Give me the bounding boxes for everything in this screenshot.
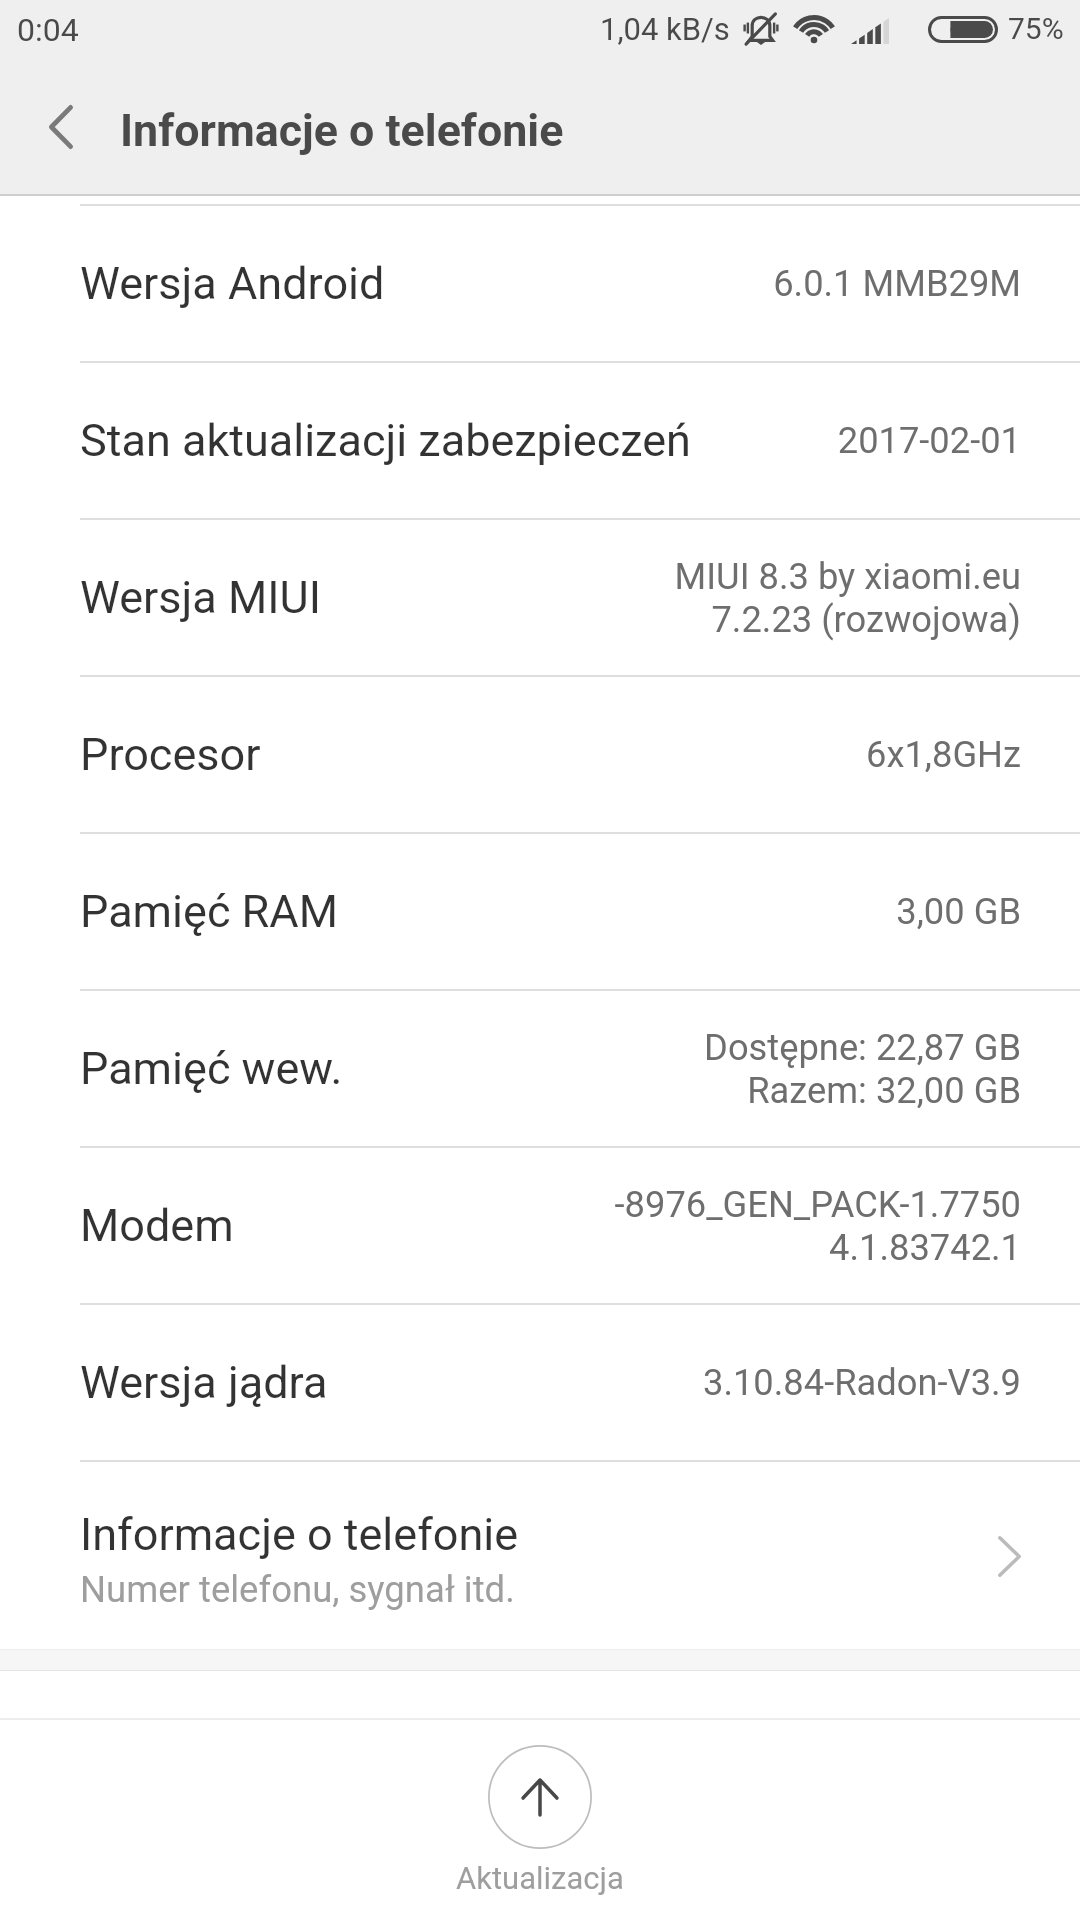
staticText: Pamięć RAM <box>80 885 338 938</box>
staticText: Wersja MIUI <box>80 571 321 624</box>
staticText: Wersja Android <box>80 257 385 310</box>
staticText: Pamięć wew. <box>80 1042 343 1095</box>
staticText: -8976_GEN_PACK-1.7750 4.1.83742.1 <box>614 1183 1021 1269</box>
button[interactable]: Wersja jądra <box>0 1305 1080 1460</box>
staticText: 3,00 GB <box>896 890 1021 933</box>
button[interactable]: Informacje o telefonie <box>0 1462 1080 1649</box>
staticText: Informacje o telefonie <box>120 104 564 157</box>
button[interactable]: Wersja MIUI <box>0 520 1080 675</box>
staticText: Dostępne: 22,87 GB Razem: 32,00 GB <box>704 1026 1021 1112</box>
button[interactable]: Stan aktualizacji zabezpieczeń <box>0 363 1080 518</box>
staticText: Wersja jądra <box>80 1356 328 1409</box>
staticText: 3.10.84-Radon-V3.9 <box>702 1361 1021 1404</box>
staticText: Stan aktualizacji zabezpieczeń <box>80 414 691 467</box>
staticText: 0:04 <box>17 11 79 49</box>
staticText: 75% <box>1008 11 1064 46</box>
button[interactable]: Pamięć wew. <box>0 991 1080 1146</box>
staticText: 1,04 kB/s <box>600 11 730 47</box>
staticText: 2017-02-01 <box>837 419 1021 462</box>
button[interactable]: Modem <box>0 1148 1080 1303</box>
staticText: Modem <box>80 1199 234 1252</box>
button[interactable]: Procesor <box>0 677 1080 832</box>
staticText: Informacje o telefonie <box>80 1508 519 1561</box>
button[interactable]: Back <box>0 60 122 194</box>
staticText: Aktualizacja <box>456 1860 624 1896</box>
staticText: 6x1,8GHz <box>866 733 1021 776</box>
button[interactable]: Wersja Android <box>0 206 1080 361</box>
button[interactable]: Aktualizacja <box>410 1720 670 1919</box>
staticText: 6.0.1 MMB29M <box>773 262 1021 305</box>
button[interactable]: Pamięć RAM <box>0 834 1080 989</box>
staticText: Numer telefonu, sygnał itd. <box>80 1568 515 1611</box>
staticText: Procesor <box>80 728 261 781</box>
staticText: MIUI 8.3 by xiaomi.eu 7.2.23 (rozwojowa) <box>674 555 1021 641</box>
